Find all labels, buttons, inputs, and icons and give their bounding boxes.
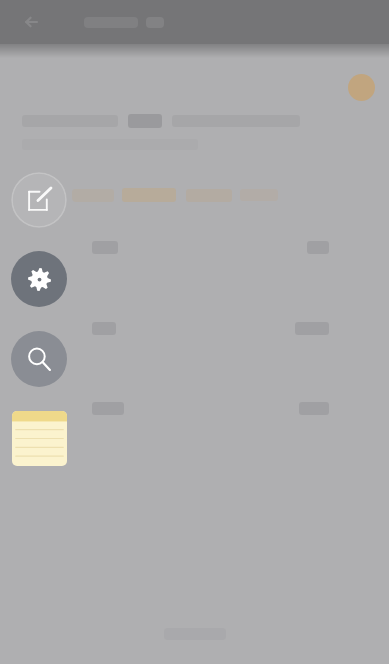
button[interactable] — [0, 395, 389, 421]
button[interactable]: Notes — [12, 411, 67, 466]
button[interactable] — [72, 188, 278, 202]
button[interactable] — [0, 234, 389, 260]
button[interactable]: Compose — [11, 172, 67, 228]
button[interactable]: Settings — [11, 251, 67, 307]
button[interactable]: Profile — [348, 74, 375, 101]
button[interactable] — [0, 315, 389, 341]
button[interactable]: Search — [11, 331, 67, 387]
button[interactable]: Back — [14, 4, 50, 40]
